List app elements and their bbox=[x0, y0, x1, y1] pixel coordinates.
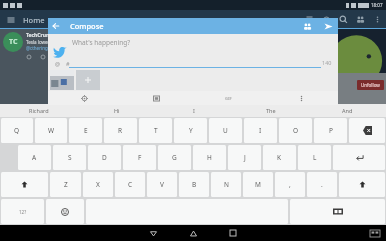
staticText: H bbox=[207, 153, 212, 162]
button[interactable]: Backspace bbox=[349, 118, 385, 143]
staticText: W bbox=[48, 126, 55, 135]
staticText: F bbox=[138, 153, 142, 162]
button[interactable]: Location bbox=[48, 91, 120, 105]
button[interactable]: Hide keyboard bbox=[370, 230, 380, 237]
button[interactable]: Hashtag bbox=[64, 59, 72, 67]
staticText: 18:07 bbox=[371, 2, 383, 8]
staticText: K bbox=[277, 153, 282, 162]
staticText: N bbox=[224, 180, 229, 189]
button[interactable]: D bbox=[88, 145, 121, 170]
button[interactable]: U bbox=[209, 118, 242, 143]
button[interactable]: Back bbox=[48, 18, 64, 34]
button[interactable]: C bbox=[115, 172, 145, 197]
staticText: GIF bbox=[225, 96, 232, 101]
staticText: X bbox=[96, 180, 100, 189]
staticText: L bbox=[313, 153, 317, 162]
button[interactable]: N bbox=[211, 172, 241, 197]
button[interactable]: S bbox=[53, 145, 86, 170]
button[interactable]: Enter bbox=[333, 145, 385, 170]
button[interactable]: I bbox=[155, 104, 232, 117]
button[interactable]: E bbox=[69, 118, 102, 143]
staticText: Z bbox=[64, 180, 68, 189]
button[interactable]: Recent apps bbox=[226, 226, 240, 240]
staticText: Hi bbox=[114, 107, 120, 114]
staticText: B bbox=[192, 180, 197, 189]
button[interactable]: K bbox=[263, 145, 296, 170]
staticText: TC bbox=[9, 37, 18, 47]
button[interactable]: Home bbox=[186, 226, 200, 240]
staticText: C bbox=[128, 180, 133, 189]
staticText: Y bbox=[189, 126, 193, 135]
button[interactable]: Emoji bbox=[46, 199, 84, 224]
staticText: Compose bbox=[70, 21, 104, 31]
staticText: G bbox=[172, 153, 177, 162]
staticText: P bbox=[329, 126, 333, 135]
staticText: # bbox=[66, 60, 70, 67]
button[interactable]: M bbox=[243, 172, 273, 197]
button[interactable]: And bbox=[309, 104, 386, 117]
button[interactable]: Photo bbox=[120, 91, 192, 105]
staticText: T bbox=[154, 126, 158, 135]
staticText: U bbox=[223, 126, 228, 135]
button[interactable]: Y bbox=[174, 118, 207, 143]
button[interactable]: I bbox=[244, 118, 277, 143]
staticText: Tesla lowers h... bbox=[26, 39, 60, 45]
button[interactable]: W bbox=[35, 118, 67, 143]
staticText: I bbox=[193, 107, 195, 114]
staticText: 140 bbox=[322, 59, 332, 66]
staticText: R bbox=[118, 126, 123, 135]
staticText: Home bbox=[23, 15, 45, 25]
button[interactable]: Add media bbox=[76, 70, 100, 90]
button[interactable]: L bbox=[298, 145, 331, 170]
staticText: J bbox=[244, 153, 246, 162]
staticText: Unfollow bbox=[361, 82, 380, 88]
button[interactable]: Keyboard layout bbox=[290, 199, 385, 224]
button[interactable]: Add people bbox=[301, 20, 313, 32]
button[interactable]: Unfollow bbox=[357, 80, 384, 90]
button[interactable]: Q bbox=[1, 118, 33, 143]
staticText: S bbox=[68, 153, 72, 162]
staticText: , bbox=[289, 180, 291, 189]
staticText: M bbox=[255, 180, 261, 189]
staticText: 12? bbox=[19, 209, 27, 215]
button[interactable]: R bbox=[104, 118, 137, 143]
button[interactable]: GIF bbox=[192, 91, 265, 105]
button[interactable]: P bbox=[314, 118, 347, 143]
button[interactable]: Mention bbox=[53, 59, 61, 67]
button[interactable]: Attached image bbox=[50, 70, 74, 90]
staticText: Q bbox=[14, 126, 20, 135]
staticText: I bbox=[259, 126, 262, 135]
staticText: D bbox=[102, 153, 107, 162]
button[interactable]: H bbox=[193, 145, 226, 170]
button[interactable]: B bbox=[179, 172, 209, 197]
button[interactable]: Richard bbox=[0, 104, 78, 117]
button[interactable]: J bbox=[228, 145, 261, 170]
staticText: @ctheringtonn bbox=[26, 45, 58, 51]
button[interactable]: Hi bbox=[78, 104, 155, 117]
button[interactable]: Z bbox=[50, 172, 81, 197]
button[interactable]: Shift bbox=[339, 172, 385, 197]
button[interactable]: Symbols bbox=[1, 199, 44, 224]
button[interactable]: T bbox=[139, 118, 172, 143]
staticText: TechCrunch bbox=[26, 32, 56, 39]
button[interactable]: More options bbox=[265, 91, 338, 105]
button[interactable]: F bbox=[123, 145, 156, 170]
button[interactable]: , bbox=[275, 172, 305, 197]
button[interactable]: Send bbox=[322, 20, 334, 32]
staticText: O bbox=[293, 126, 299, 135]
staticText: A bbox=[32, 153, 37, 162]
staticText: . bbox=[321, 180, 323, 189]
staticText: The bbox=[266, 107, 276, 114]
button[interactable]: Back bbox=[146, 226, 160, 240]
button[interactable]: G bbox=[158, 145, 191, 170]
button[interactable]: O bbox=[279, 118, 312, 143]
staticText: V bbox=[160, 180, 164, 189]
button[interactable]: V bbox=[147, 172, 177, 197]
button[interactable]: The bbox=[232, 104, 309, 117]
staticText: Richard bbox=[29, 107, 49, 114]
button[interactable]: Shift bbox=[1, 172, 48, 197]
button[interactable]: X bbox=[83, 172, 113, 197]
button[interactable]: A bbox=[18, 145, 51, 170]
